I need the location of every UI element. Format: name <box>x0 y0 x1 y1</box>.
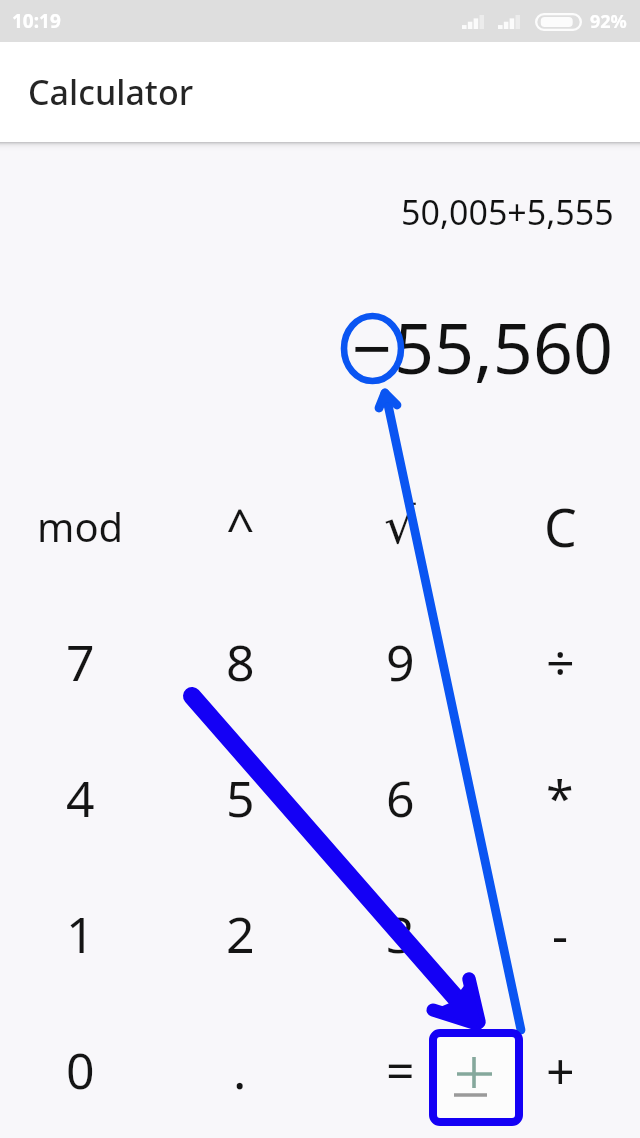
button[interactable]: √ <box>320 458 480 594</box>
staticText: 2 <box>226 900 255 968</box>
staticText: 50,005+5,555 <box>401 189 614 235</box>
button[interactable]: = <box>320 1002 480 1138</box>
staticText: 5 <box>226 764 255 832</box>
button[interactable]: 3 <box>320 866 480 1002</box>
staticText: = <box>386 1036 415 1104</box>
staticText: 6 <box>386 764 415 832</box>
staticText: − <box>352 299 393 394</box>
staticText: - <box>552 900 569 968</box>
staticText: + <box>546 1036 575 1104</box>
button[interactable]: + <box>480 1002 640 1138</box>
staticText: . <box>233 1036 247 1104</box>
staticText: * <box>546 764 574 832</box>
button[interactable]: 4 <box>0 730 160 866</box>
button[interactable]: ÷ <box>480 594 640 730</box>
staticText: 9 <box>386 628 415 696</box>
staticText: 0 <box>66 1036 95 1104</box>
staticText: 8 <box>226 628 255 696</box>
staticText: 4 <box>66 764 95 832</box>
staticText: ÷ <box>546 628 575 696</box>
button[interactable]: 7 <box>0 594 160 730</box>
button[interactable]: 2 <box>160 866 320 1002</box>
staticText: 92% <box>590 9 627 34</box>
button[interactable]: * <box>480 730 640 866</box>
button[interactable]: . <box>160 1002 320 1138</box>
staticText: mod <box>37 499 124 553</box>
button[interactable]: 8 <box>160 594 320 730</box>
staticText: √ <box>384 497 416 555</box>
button[interactable]: 1 <box>0 866 160 1002</box>
staticText: Calculator <box>28 69 194 115</box>
staticText: 7 <box>66 628 95 696</box>
button[interactable]: ^ <box>160 458 320 594</box>
button[interactable]: 5 <box>160 730 320 866</box>
button[interactable]: 9 <box>320 594 480 730</box>
staticText: ^ <box>226 492 255 560</box>
staticText: 10:19 <box>12 8 61 34</box>
button[interactable]: Toggle sign plus minus <box>429 1029 523 1126</box>
button[interactable]: 0 <box>0 1002 160 1138</box>
button[interactable]: - <box>480 866 640 1002</box>
button[interactable]: C <box>480 458 640 594</box>
staticText: 3 <box>386 900 415 968</box>
button[interactable]: mod <box>0 458 160 594</box>
staticText: 55,560 <box>394 299 613 394</box>
staticText: C <box>544 491 577 562</box>
button[interactable]: 6 <box>320 730 480 866</box>
staticText: 1 <box>66 900 95 968</box>
